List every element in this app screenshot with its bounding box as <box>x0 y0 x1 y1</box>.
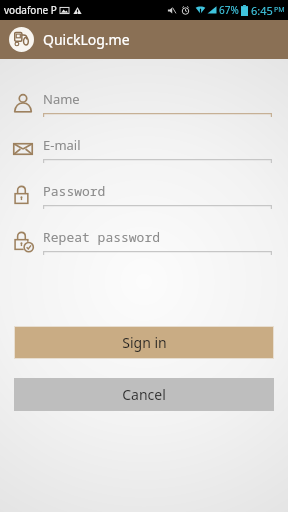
staticText: vodafone P <box>4 3 57 17</box>
staticText: QuickLog.me <box>43 30 130 49</box>
button[interactable]: Cancel <box>14 378 274 411</box>
button[interactable]: Repeat password <box>12 224 272 258</box>
button[interactable]: QuickLog.me logo <box>9 27 34 52</box>
button[interactable]: Name <box>12 86 272 120</box>
staticText: Cancel <box>122 385 166 404</box>
staticText: 6:45 <box>251 3 273 18</box>
staticText: Sign in <box>122 333 167 352</box>
staticText: Repeat password <box>43 228 161 246</box>
staticText: E-mail <box>43 136 81 154</box>
button[interactable]: Password <box>12 178 272 212</box>
staticText: PM <box>274 5 285 15</box>
button[interactable]: Sign in <box>14 326 274 359</box>
staticText: Password <box>43 182 106 200</box>
staticText: Name <box>43 90 80 108</box>
staticText: 67% <box>219 3 239 17</box>
button[interactable]: E-mail <box>12 132 272 166</box>
